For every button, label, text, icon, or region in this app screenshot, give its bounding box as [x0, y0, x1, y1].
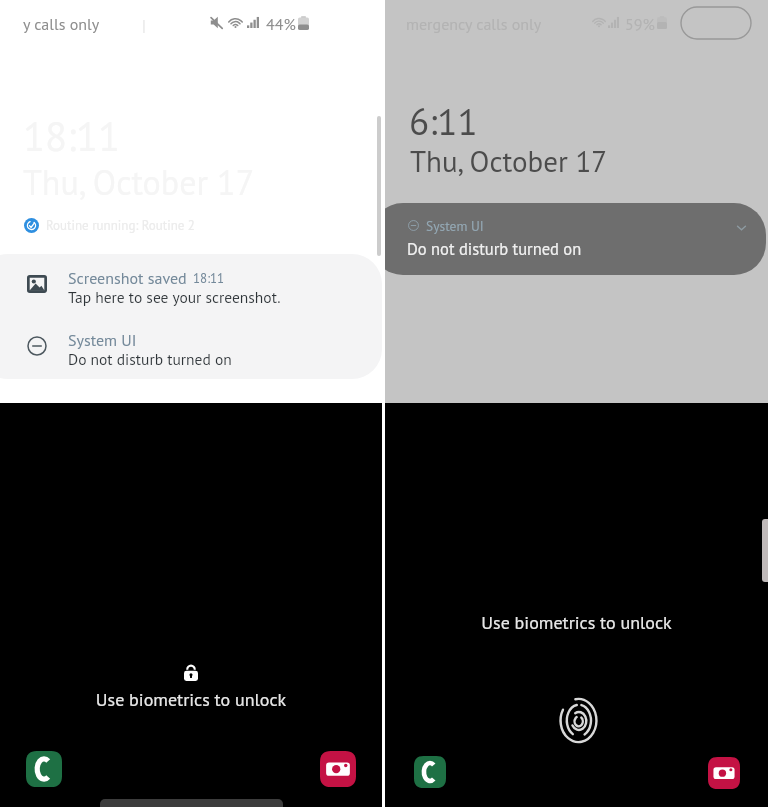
- staticText: Thu, October 17: [23, 160, 255, 204]
- staticText: Routine running: Routine 2: [46, 217, 195, 234]
- staticText: Thu, October 17: [410, 142, 608, 180]
- staticText: 18:11: [193, 270, 225, 287]
- button[interactable]: Phone: [414, 756, 446, 788]
- button[interactable]: System UI: [0, 316, 382, 378]
- staticText: 59%: [625, 14, 655, 35]
- staticText: y calls only: [23, 14, 100, 35]
- staticText: mergency calls only: [406, 14, 542, 35]
- staticText: Do not disturb turned on: [68, 349, 232, 369]
- staticText: Use biometrics to unlock: [0, 688, 382, 711]
- staticText: System UI: [426, 217, 484, 234]
- button[interactable]: Phone: [26, 751, 62, 787]
- button[interactable]: Camera: [320, 751, 356, 787]
- staticText: 44%: [266, 14, 296, 35]
- staticText: Use biometrics to unlock: [385, 611, 768, 634]
- staticText: Screenshot saved: [68, 268, 187, 289]
- staticText: 18:11: [23, 110, 121, 162]
- staticText: |: [142, 15, 146, 36]
- button[interactable]: Camera: [708, 757, 740, 789]
- staticText: Tap here to see your screenshot.: [68, 287, 281, 307]
- button[interactable]: System UI: [385, 203, 766, 275]
- button[interactable]: Screenshot saved: [0, 254, 382, 316]
- staticText: Do not disturb turned on: [407, 238, 582, 259]
- staticText: 6:11: [409, 97, 478, 145]
- staticText: System UI: [68, 330, 137, 351]
